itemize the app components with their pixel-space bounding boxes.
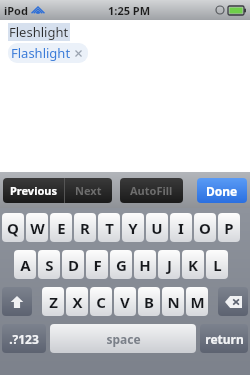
button[interactable]: S (38, 250, 60, 279)
staticText: space (106, 331, 141, 347)
button[interactable]: N (162, 287, 184, 316)
button[interactable]: Q (2, 213, 24, 242)
staticText: P (224, 218, 234, 238)
staticText: W (30, 218, 45, 238)
staticText: F (93, 255, 102, 275)
button[interactable]: M (186, 287, 208, 316)
staticText: I (178, 218, 184, 238)
staticText: X (72, 292, 83, 312)
button[interactable]: I (170, 213, 192, 242)
staticText: Previous (10, 183, 57, 198)
button[interactable]: C (90, 287, 112, 316)
button[interactable]: Shift (2, 287, 32, 316)
button[interactable]: E (50, 213, 72, 242)
button[interactable]: R (74, 213, 96, 242)
button[interactable]: F (86, 250, 108, 279)
staticText: Y (128, 218, 138, 238)
button[interactable]: L (206, 250, 228, 279)
staticText: return (205, 331, 244, 347)
staticText: AutoFill (130, 183, 173, 198)
staticText: B (144, 292, 154, 312)
staticText: M (190, 292, 205, 312)
staticText: A (20, 255, 31, 275)
staticText: Fleshlight (9, 23, 69, 41)
button[interactable]: Next (75, 178, 102, 203)
button[interactable]: Done (206, 178, 238, 203)
staticText: 1:25 PM (108, 3, 151, 18)
button[interactable]: P (218, 213, 240, 242)
other: Dismiss (74, 49, 83, 58)
button[interactable]: X (66, 287, 88, 316)
staticText: U (151, 218, 163, 238)
staticText: Flashlight (11, 44, 71, 62)
button[interactable]: Previous (10, 178, 57, 203)
button[interactable]: H (134, 250, 156, 279)
staticText: Z (49, 292, 58, 312)
button[interactable]: O (194, 213, 216, 242)
button[interactable]: Z (42, 287, 64, 316)
button[interactable]: Backspace (218, 287, 248, 316)
button[interactable]: D (62, 250, 84, 279)
button[interactable]: Y (122, 213, 144, 242)
staticText: S (45, 255, 54, 275)
staticText: J (167, 255, 172, 275)
staticText: O (199, 218, 211, 238)
staticText: V (120, 292, 130, 312)
staticText: E (57, 218, 66, 238)
staticText: T (105, 218, 114, 238)
button[interactable]: T (98, 213, 120, 242)
button[interactable]: J (158, 250, 180, 279)
button[interactable]: W (26, 213, 48, 242)
staticText: K (188, 255, 198, 275)
staticText: R (80, 218, 90, 238)
button[interactable]: G (110, 250, 132, 279)
staticText: H (139, 255, 151, 275)
button[interactable]: U (146, 213, 168, 242)
staticText: G (116, 255, 127, 275)
button[interactable]: .?123 (2, 324, 46, 353)
staticText: .?123 (9, 331, 39, 347)
staticText: iPod (4, 3, 28, 18)
button[interactable]: space (50, 324, 196, 353)
staticText: C (96, 292, 106, 312)
button[interactable]: V (114, 287, 136, 316)
staticText: D (68, 255, 79, 275)
button[interactable]: B (138, 287, 160, 316)
staticText: Next (75, 183, 102, 198)
staticText: Done (206, 183, 238, 199)
button[interactable]: Flashlight (11, 44, 85, 62)
button[interactable]: AutoFill (130, 178, 173, 203)
button[interactable]: return (200, 324, 248, 353)
button[interactable]: K (182, 250, 204, 279)
staticText: N (167, 292, 180, 312)
staticText: Q (7, 218, 19, 238)
button[interactable]: A (14, 250, 36, 279)
staticText: L (213, 255, 222, 275)
